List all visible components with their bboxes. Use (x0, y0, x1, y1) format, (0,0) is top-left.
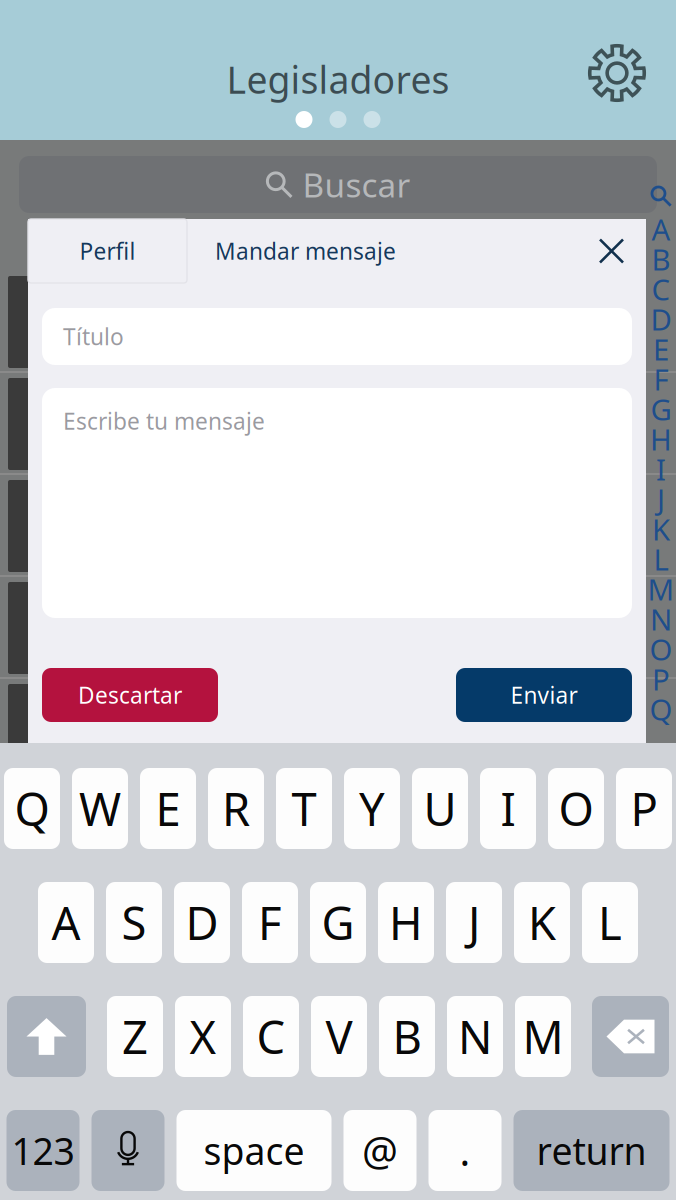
staticText: G (321, 892, 354, 953)
staticText: L (653, 539, 668, 578)
staticText: H (389, 892, 423, 953)
button[interactable]: 123 (6, 1110, 79, 1191)
button[interactable]: V (311, 996, 367, 1077)
button[interactable]: Mandar mensaje (187, 219, 424, 283)
button[interactable]: L (582, 882, 638, 963)
staticText: I (656, 449, 666, 488)
button[interactable]: W (72, 768, 128, 849)
button[interactable]: Close (584, 219, 639, 283)
staticText: K (528, 892, 556, 953)
staticText: Título (63, 321, 124, 351)
button[interactable]: Z (107, 996, 163, 1077)
button[interactable]: X (175, 996, 231, 1077)
button[interactable]: Shift (7, 996, 86, 1077)
button[interactable]: Buscar (0, 132, 676, 213)
staticText: W (79, 778, 121, 839)
button[interactable]: A (38, 882, 94, 963)
staticText: Perfil (79, 236, 135, 266)
button[interactable]: M (515, 996, 571, 1077)
button[interactable]: . (428, 1110, 501, 1191)
button[interactable]: D (174, 882, 230, 963)
button[interactable]: P (616, 768, 672, 849)
staticText: R (222, 778, 250, 839)
button[interactable]: T (276, 768, 332, 849)
staticText: Mandar mensaje (215, 236, 396, 266)
staticText: S (121, 892, 146, 953)
button[interactable]: Settings (580, 36, 654, 110)
button[interactable]: B (379, 996, 435, 1077)
button[interactable]: Dictate (91, 1110, 164, 1191)
staticText: P (630, 778, 657, 839)
staticText: Legisladores (226, 54, 449, 104)
staticText: M (522, 1006, 563, 1067)
staticText: I (500, 778, 515, 839)
staticText: J (468, 892, 480, 953)
staticText: Q (14, 778, 49, 839)
button[interactable]: Y (344, 768, 400, 849)
staticText: Enviar (510, 680, 577, 710)
staticText: T (291, 778, 316, 839)
button[interactable]: Descartar (42, 668, 218, 722)
button[interactable]: K (514, 882, 570, 963)
button[interactable]: Enviar (456, 668, 632, 722)
staticText: F (653, 359, 668, 398)
staticText: X (189, 1006, 216, 1067)
button[interactable]: F (242, 882, 298, 963)
staticText: C (256, 1006, 285, 1067)
staticText: Escribe tu mensaje (63, 406, 265, 436)
staticText: H (650, 419, 672, 458)
staticText: V (325, 1006, 352, 1067)
button[interactable]: @ (343, 1110, 416, 1191)
staticText: K (652, 509, 670, 548)
button[interactable]: H (378, 882, 434, 963)
button[interactable]: I (480, 768, 536, 849)
staticText: O (649, 629, 672, 668)
staticText: @ (362, 1124, 398, 1177)
staticText: 123 (11, 1126, 74, 1175)
staticText: space (203, 1126, 304, 1175)
staticText: . (459, 1124, 470, 1177)
button[interactable]: Perfil (28, 219, 187, 283)
button[interactable]: C (243, 996, 299, 1077)
button[interactable]: S (106, 882, 162, 963)
staticText: O (558, 778, 593, 839)
button[interactable]: E (140, 768, 196, 849)
staticText: F (258, 892, 282, 953)
staticText: J (657, 479, 665, 518)
staticText: L (598, 892, 622, 953)
button[interactable]: R (208, 768, 264, 849)
button[interactable]: U (412, 768, 468, 849)
staticText: E (155, 778, 180, 839)
button[interactable]: O (548, 768, 604, 849)
staticText: D (650, 299, 671, 338)
button[interactable]: Delete (592, 996, 669, 1077)
staticText: N (650, 599, 672, 638)
button[interactable]: G (310, 882, 366, 963)
staticText: return (536, 1126, 646, 1175)
staticText: N (458, 1006, 492, 1067)
button[interactable]: J (446, 882, 502, 963)
staticText: Buscar (302, 162, 410, 207)
staticText: U (423, 778, 456, 839)
button[interactable]: return (513, 1110, 669, 1191)
button[interactable]: Q (4, 768, 60, 849)
button[interactable]: space (176, 1110, 331, 1191)
staticText: D (185, 892, 218, 953)
staticText: M (647, 569, 674, 608)
staticText: B (651, 239, 670, 278)
staticText: Y (359, 778, 385, 839)
staticText: B (392, 1006, 421, 1067)
staticText: Z (122, 1006, 148, 1067)
staticText: A (651, 209, 670, 248)
button[interactable]: N (447, 996, 503, 1077)
staticText: A (51, 892, 80, 953)
staticText: G (650, 389, 671, 428)
staticText: Descartar (78, 680, 182, 710)
staticText: Q (649, 689, 672, 728)
staticText: P (652, 659, 670, 698)
staticText: E (653, 329, 669, 368)
staticText: C (651, 269, 670, 308)
